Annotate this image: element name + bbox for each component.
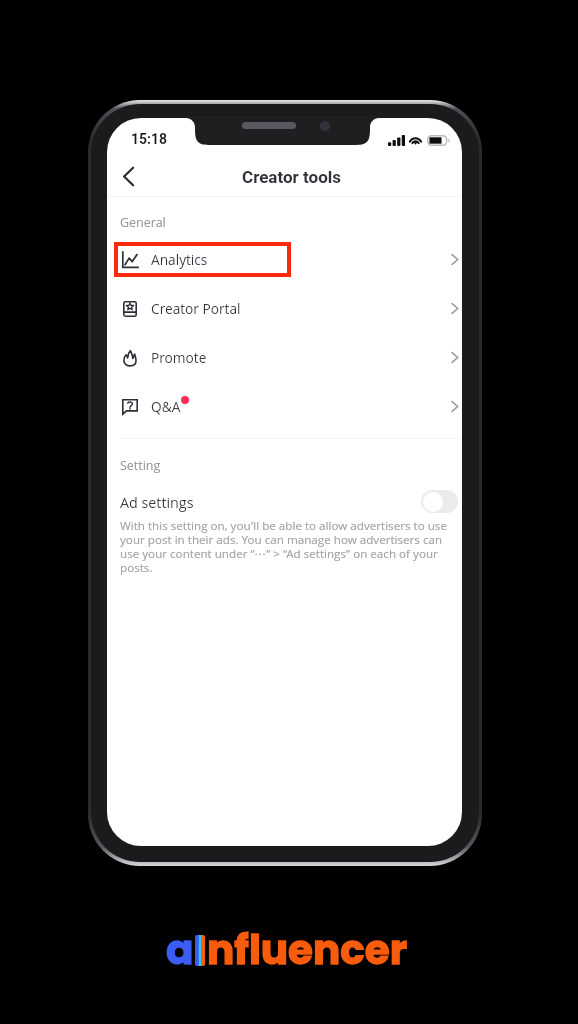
staticText: Setting: [120, 457, 161, 474]
button[interactable]: Analytics: [107, 235, 462, 284]
staticText: General: [120, 214, 166, 231]
staticText: Ad settings: [120, 493, 194, 512]
staticText: Creator Portal: [151, 299, 241, 318]
staticText: Analytics: [151, 250, 208, 269]
staticText: 15:18: [131, 131, 168, 147]
staticText: Q&A: [151, 397, 181, 416]
button[interactable]: Back: [108, 157, 148, 195]
button[interactable]: Promote: [107, 333, 462, 382]
staticText: With this setting on, you'll be able to …: [120, 518, 450, 575]
staticText: nfluencer: [207, 921, 408, 978]
staticText: Promote: [151, 348, 207, 367]
button[interactable]: Ad settings toggle: [421, 490, 458, 513]
button[interactable]: Creator Portal: [107, 284, 462, 333]
staticText: a: [166, 921, 194, 978]
staticText: Creator tools: [242, 167, 342, 187]
button[interactable]: Q&A: [107, 382, 462, 431]
